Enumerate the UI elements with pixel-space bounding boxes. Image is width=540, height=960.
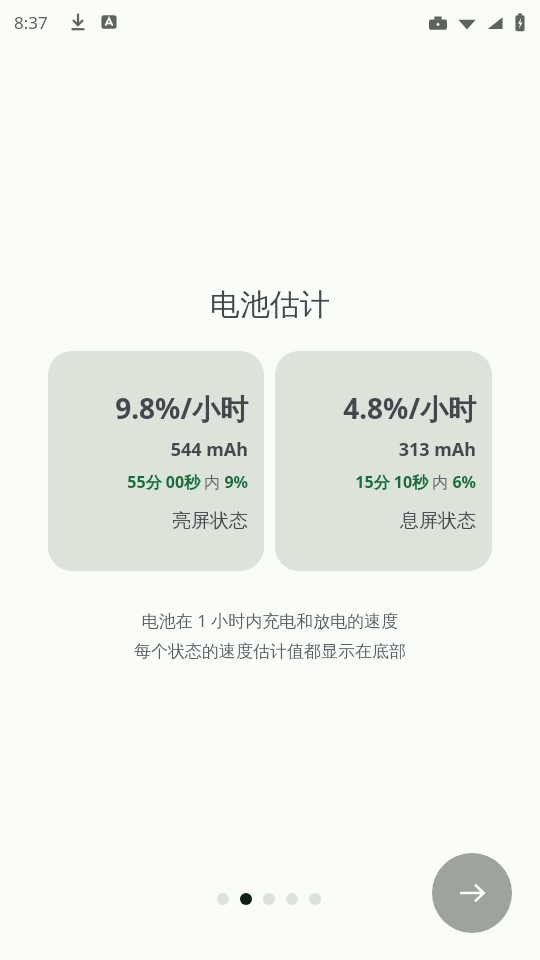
staticText: 55分 00秒 内 9% bbox=[127, 471, 248, 493]
button[interactable]: 4.8%/小时 bbox=[275, 351, 492, 571]
staticText: 亮屏状态 bbox=[172, 509, 248, 533]
button[interactable]: 9.8%/小时 bbox=[48, 351, 264, 571]
button[interactable]: Page 4 bbox=[286, 893, 298, 905]
staticText: 9.8%/小时 bbox=[115, 389, 248, 427]
staticText: 电池估计 bbox=[210, 286, 330, 324]
staticText: 15分 10秒 内 6% bbox=[355, 471, 476, 493]
staticText: 息屏状态 bbox=[400, 509, 476, 533]
staticText: 8:37 bbox=[14, 11, 48, 34]
button[interactable]: Page 2 bbox=[240, 893, 252, 905]
button[interactable]: Next bbox=[432, 853, 512, 933]
staticText: 313 mAh bbox=[398, 437, 476, 462]
staticText: 电池在 1 小时内充电和放电的速度 每个状态的速度估计值都显示在底部 bbox=[134, 609, 406, 662]
staticText: 4.8%/小时 bbox=[343, 389, 476, 427]
staticText: 544 mAh bbox=[170, 437, 248, 462]
button[interactable]: Page 3 bbox=[263, 893, 275, 905]
button[interactable]: Page 1 bbox=[217, 893, 229, 905]
button[interactable]: Page 5 bbox=[309, 893, 321, 905]
